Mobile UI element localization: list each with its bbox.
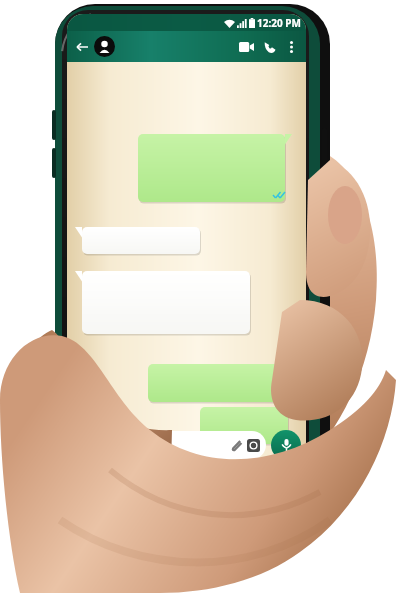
staticText: 12:20 PM [257,16,301,30]
button[interactable]: Back [73,38,91,56]
button[interactable]: Video call [234,35,258,59]
button[interactable]: More options [282,38,300,56]
button[interactable]: Emoji [73,431,266,459]
button[interactable]: Voice message [271,430,301,460]
button[interactable] [200,407,295,444]
button[interactable] [138,134,292,202]
button[interactable]: Voice call [258,35,282,59]
other: Attach [230,439,243,452]
button[interactable] [75,271,250,334]
button[interactable] [75,227,200,254]
other: Camera [247,439,260,452]
button[interactable]: Contact photo [94,36,115,57]
button[interactable] [148,364,295,402]
